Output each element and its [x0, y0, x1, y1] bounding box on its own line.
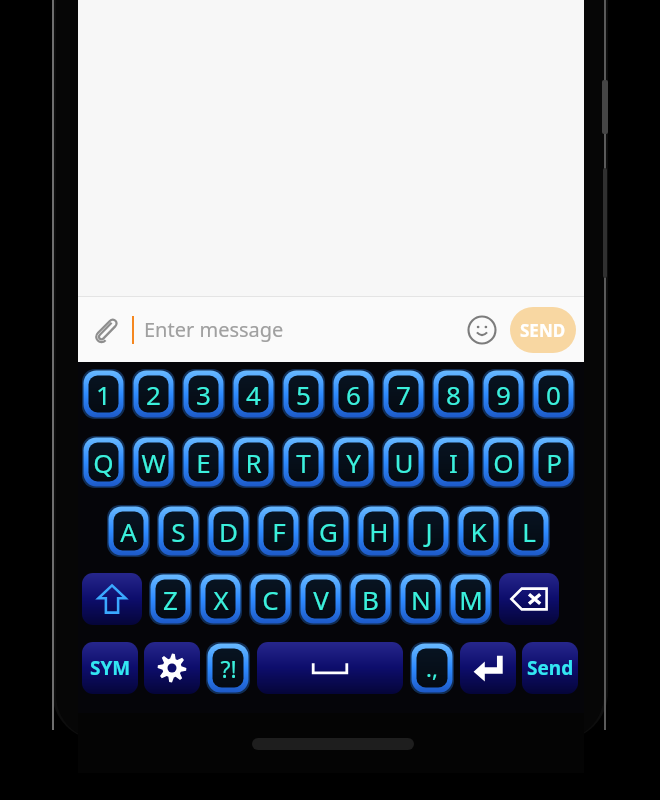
button[interactable]: I — [432, 436, 475, 488]
button[interactable]: Z — [149, 573, 192, 625]
staticText: Y — [346, 445, 361, 480]
staticText: 1 — [96, 377, 111, 412]
button[interactable]: Attach file — [78, 303, 132, 357]
staticText: P — [546, 445, 562, 480]
staticText: B — [362, 582, 379, 617]
staticText: K — [470, 514, 487, 549]
button[interactable]: Send — [522, 642, 578, 694]
button[interactable]: Q — [82, 436, 125, 488]
button[interactable]: B — [349, 573, 392, 625]
button[interactable]: 0 — [532, 369, 575, 419]
button[interactable]: O — [482, 436, 525, 488]
staticText: C — [262, 582, 279, 617]
button[interactable]: Settings — [144, 642, 200, 694]
button[interactable]: W — [132, 436, 175, 488]
staticText: X — [213, 582, 229, 617]
button[interactable]: A — [107, 505, 150, 557]
button[interactable]: 1 — [82, 369, 125, 419]
button[interactable]: C — [249, 573, 292, 625]
staticText: SYM — [90, 655, 131, 681]
staticText: E — [196, 445, 211, 480]
button[interactable]: ., — [410, 642, 454, 694]
staticText: Q — [93, 445, 114, 480]
staticText: SEND — [520, 319, 566, 342]
button[interactable]: G — [307, 505, 350, 557]
button[interactable]: 8 — [432, 369, 475, 419]
button[interactable]: 9 — [482, 369, 525, 419]
staticText: D — [219, 514, 238, 549]
button[interactable]: D — [207, 505, 250, 557]
staticText: 6 — [346, 377, 361, 412]
staticText: 5 — [296, 377, 311, 412]
button[interactable]: T — [282, 436, 325, 488]
staticText: S — [171, 514, 186, 549]
button[interactable]: H — [357, 505, 400, 557]
button[interactable]: SYM — [82, 642, 138, 694]
staticText: T — [296, 445, 311, 480]
button[interactable]: 3 — [182, 369, 225, 419]
button[interactable]: N — [399, 573, 442, 625]
button[interactable]: 2 — [132, 369, 175, 419]
button[interactable]: Enter — [460, 642, 516, 694]
staticText: Send — [527, 655, 574, 681]
staticText: M — [459, 582, 483, 617]
staticText: O — [493, 445, 514, 480]
staticText: 3 — [196, 377, 211, 412]
button[interactable]: Y — [332, 436, 375, 488]
button[interactable]: Space — [257, 642, 403, 694]
staticText: Enter message — [144, 316, 284, 343]
staticText: 0 — [546, 377, 561, 412]
button[interactable]: 5 — [282, 369, 325, 419]
button[interactable]: ?! — [206, 642, 250, 694]
button[interactable]: Shift — [82, 573, 142, 625]
button[interactable]: P — [532, 436, 575, 488]
staticText: ?! — [220, 653, 237, 684]
button[interactable]: R — [232, 436, 275, 488]
staticText: W — [141, 445, 166, 480]
button[interactable]: 4 — [232, 369, 275, 419]
button[interactable]: U — [382, 436, 425, 488]
staticText: H — [369, 514, 389, 549]
button[interactable]: Emoji — [458, 306, 506, 354]
staticText: A — [120, 514, 137, 549]
button[interactable]: E — [182, 436, 225, 488]
staticText: J — [425, 514, 433, 549]
button[interactable]: 6 — [332, 369, 375, 419]
staticText: G — [319, 514, 338, 549]
staticText: Z — [163, 582, 178, 617]
staticText: L — [522, 514, 536, 549]
staticText: 4 — [246, 377, 261, 412]
staticText: I — [449, 445, 458, 480]
button[interactable]: J — [407, 505, 450, 557]
button[interactable]: 7 — [382, 369, 425, 419]
button[interactable]: SEND — [510, 307, 576, 353]
button[interactable]: M — [449, 573, 492, 625]
button[interactable]: S — [157, 505, 200, 557]
button[interactable]: X — [199, 573, 242, 625]
button[interactable]: K — [457, 505, 500, 557]
staticText: ., — [426, 653, 438, 683]
button[interactable]: F — [257, 505, 300, 557]
staticText: F — [272, 514, 286, 549]
staticText: 9 — [496, 377, 511, 412]
staticText: 2 — [146, 377, 161, 412]
button[interactable]: V — [299, 573, 342, 625]
button[interactable]: L — [507, 505, 550, 557]
staticText: R — [245, 445, 262, 480]
staticText: V — [313, 582, 329, 617]
staticText: N — [411, 582, 431, 617]
staticText: U — [394, 445, 414, 480]
staticText: 7 — [396, 377, 411, 412]
staticText: 8 — [446, 377, 461, 412]
button[interactable]: Backspace — [499, 573, 559, 625]
